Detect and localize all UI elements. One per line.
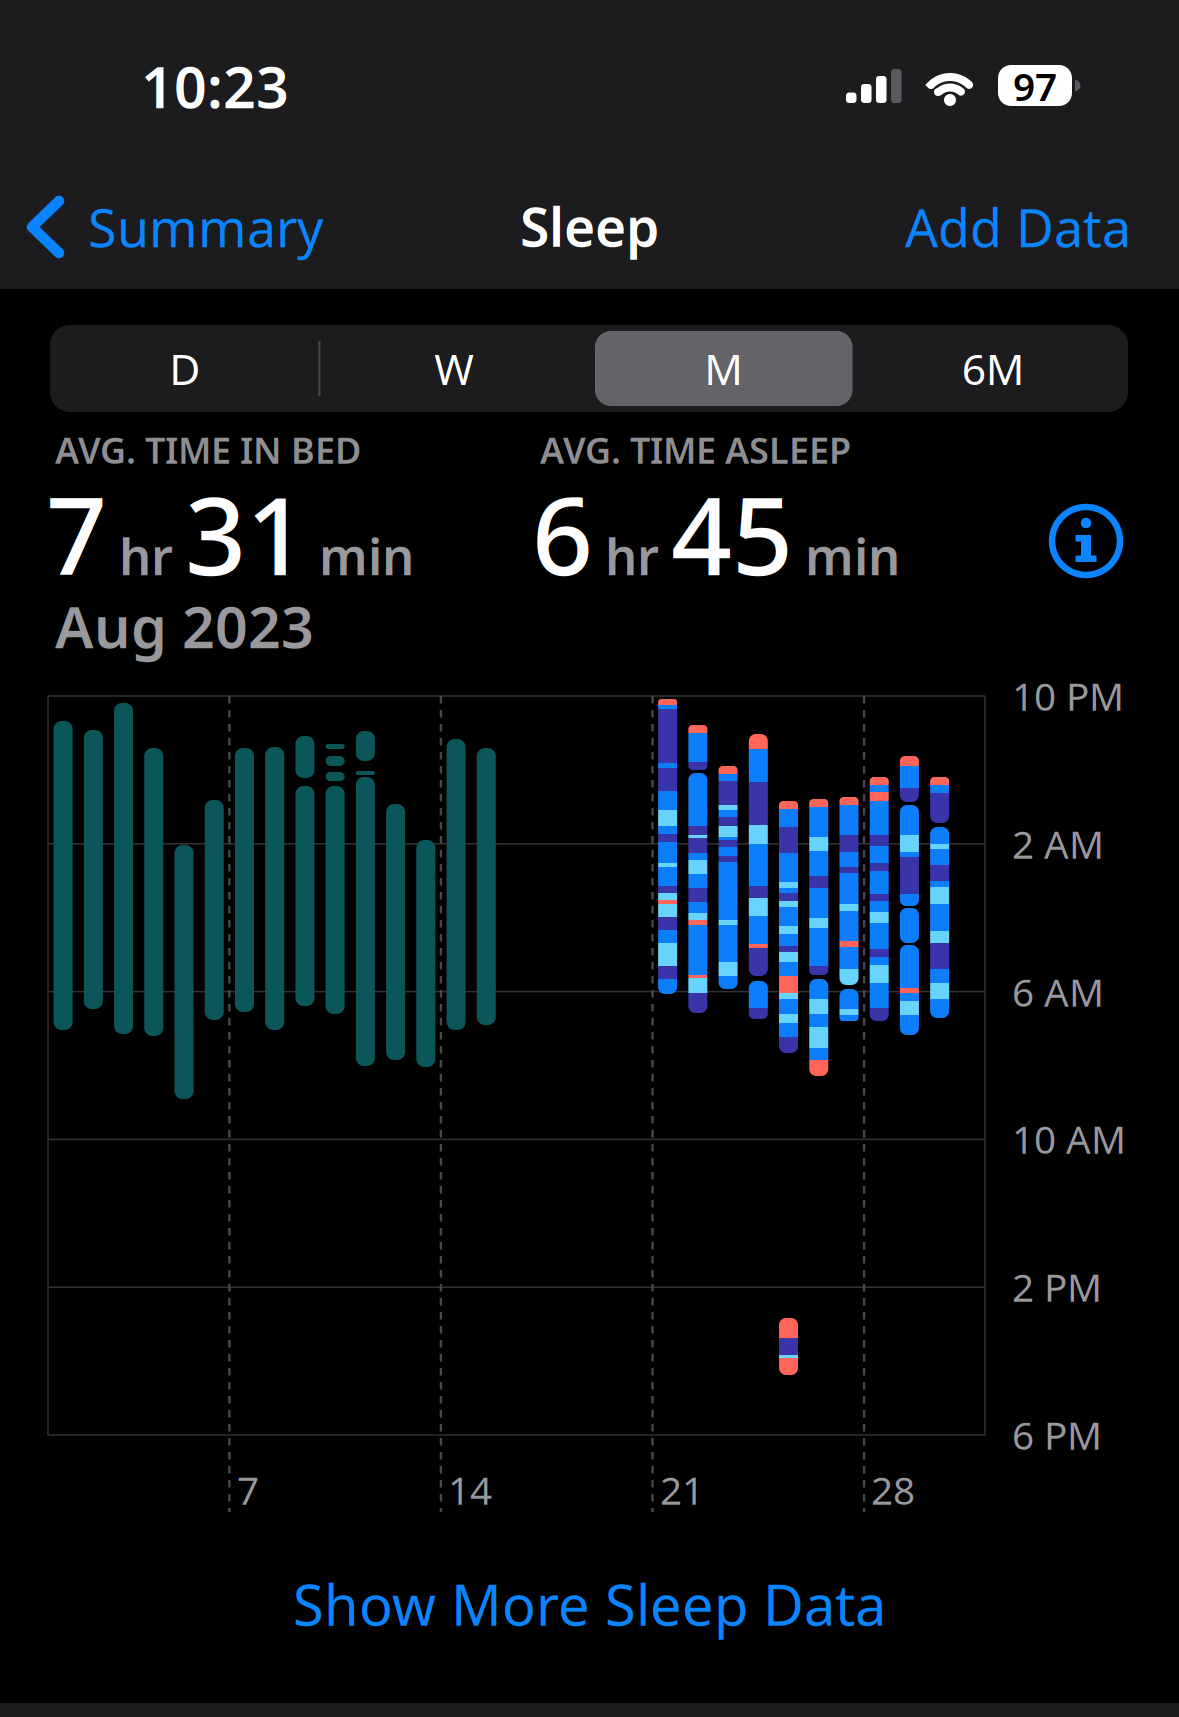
- staticText: min: [319, 522, 414, 589]
- staticText: Show More Sleep Data: [293, 1567, 886, 1641]
- staticText: 14: [448, 1464, 492, 1515]
- button[interactable]: Summary: [0, 0, 1179, 1717]
- staticText: M: [704, 340, 743, 397]
- button[interactable]: 6M: [0, 0, 1179, 1717]
- staticText: 10 AM: [1012, 1113, 1126, 1164]
- staticText: Aug 2023: [55, 588, 314, 664]
- staticText: 97: [1013, 60, 1057, 112]
- staticText: hr: [119, 522, 173, 589]
- button[interactable]: M: [0, 0, 1179, 1717]
- staticText: 7: [46, 463, 107, 605]
- staticText: Sleep: [520, 191, 659, 261]
- button[interactable]: [0, 0, 1179, 1717]
- staticText: 6 PM: [1012, 1409, 1102, 1460]
- staticText: min: [805, 522, 900, 589]
- staticText: 45: [671, 463, 793, 605]
- staticText: D: [169, 340, 200, 397]
- button[interactable]: D: [0, 0, 1179, 1717]
- staticText: 6: [532, 463, 593, 605]
- staticText: 28: [871, 1464, 915, 1515]
- staticText: 31: [185, 463, 307, 605]
- staticText: 2 PM: [1012, 1261, 1102, 1312]
- staticText: AVG. TIME ASLEEP: [540, 426, 851, 474]
- staticText: Add Data: [905, 192, 1131, 262]
- staticText: hr: [605, 522, 659, 589]
- button[interactable]: Add Data: [0, 0, 1179, 1717]
- staticText: 10 PM: [1012, 670, 1124, 721]
- staticText: AVG. TIME IN BED: [55, 426, 361, 474]
- button[interactable]: Show More Sleep Data: [0, 0, 1179, 1717]
- staticText: 21: [660, 1464, 704, 1515]
- button[interactable]: W: [0, 0, 1179, 1717]
- staticText: W: [434, 340, 474, 397]
- staticText: 2 AM: [1012, 818, 1104, 869]
- staticText: 10:23: [141, 48, 289, 124]
- staticText: Summary: [88, 192, 324, 262]
- staticText: 7: [237, 1464, 259, 1515]
- staticText: 6M: [962, 340, 1025, 397]
- staticText: 6 AM: [1012, 966, 1104, 1017]
